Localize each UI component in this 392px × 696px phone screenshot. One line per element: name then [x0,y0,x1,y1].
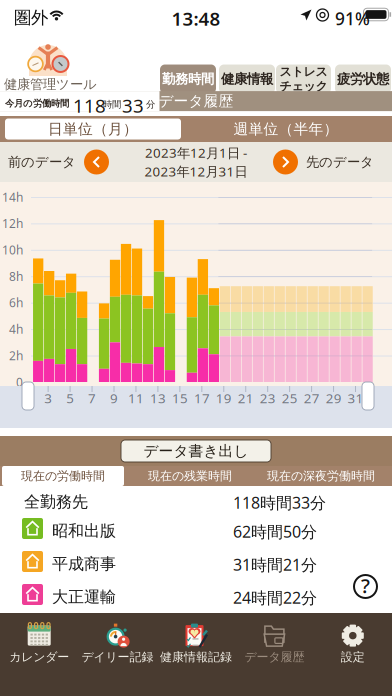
staticText: 0 [16,374,23,390]
staticText: データ履歴 [158,92,233,110]
staticText: 3 [44,389,52,407]
staticText: 大正運輸 [52,587,116,607]
staticText: 健康情報 [221,71,273,87]
staticText: 2023年12月1日 - [145,144,247,161]
staticText: 13:48 [171,6,220,31]
button[interactable]: 週単位（半年） [187,118,385,139]
staticText: 昭和出版 [52,521,116,541]
staticText: チェック [279,79,327,94]
staticText: 19 [216,389,232,407]
staticText: 平成商事 [52,554,116,574]
button[interactable]: 現在の労働時間 [2,466,124,486]
button[interactable]: ストレス [276,64,331,93]
button[interactable]: 健康情報 [219,64,275,93]
staticText: データ履歴 [244,650,304,664]
button[interactable]: 平成商事 [0,548,392,576]
staticText: 10h [2,242,23,258]
button[interactable]: 先のデータ [273,142,374,182]
staticText: 31 [348,389,364,407]
button[interactable]: 健康情報記録 [157,618,235,670]
staticText: 11 [128,389,144,407]
staticText: 29 [326,389,342,407]
staticText: 設定 [341,650,365,664]
staticText: 現在の労働時間 [21,469,105,483]
staticText: 17 [194,389,210,407]
staticText: 14h [2,189,23,205]
staticText: 勤務時間 [162,71,214,87]
staticText: 7 [88,389,96,407]
staticText: 健康情報記録 [160,650,232,664]
staticText: 62時間50分 [233,521,317,542]
button[interactable]: 大正運輸 [0,581,392,609]
staticText: 分 [146,99,155,110]
staticText: 現在の残業時間 [148,469,232,483]
staticText: 圏外 [14,7,48,28]
staticText: 118時間33分 [233,492,326,513]
staticText: 12h [2,215,23,231]
staticText: 21 [238,389,254,407]
staticText: 日単位（月） [48,120,138,138]
staticText: 6h [9,295,23,311]
staticText: 現在の深夜労働時間 [267,469,375,483]
staticText: データ書き出し [143,442,248,460]
staticText: 今月の労働時間 [5,98,69,109]
button[interactable]: 日単位（月） [5,118,181,139]
staticText: ストレス [279,64,327,79]
staticText: 15 [172,389,188,407]
button[interactable]: 昭和出版 [0,515,392,543]
button[interactable]: カレンダー [0,618,78,670]
staticText: 健康管理ツール [4,76,97,92]
staticText: 週単位（半年） [233,120,338,138]
staticText: 23 [260,389,276,407]
staticText: 5 [66,389,74,407]
staticText: 先のデータ [306,154,374,170]
staticText: 2023年12月31日 [144,162,247,180]
button[interactable]: データ履歴 [235,618,314,670]
staticText: 13 [150,389,166,407]
staticText: 118 [73,93,106,118]
staticText: 91% [335,7,370,30]
staticText: 33 [122,93,144,118]
button[interactable]: 勤務時間 [160,64,216,93]
staticText: 全勤務先 [24,492,88,512]
button[interactable]: 設定 [314,618,392,670]
staticText: 31時間21分 [233,554,317,575]
staticText: 8h [9,268,23,284]
staticText: デイリー記録 [82,650,154,664]
button[interactable]: 前のデータ [8,142,109,182]
button[interactable]: 現在の深夜労働時間 [252,466,390,486]
button[interactable]: 現在の残業時間 [126,466,254,486]
staticText: ? [361,572,370,599]
staticText: 前のデータ [8,154,76,170]
staticText: 4h [9,321,23,337]
staticText: 時間 [103,99,121,110]
staticText: 2h [9,348,23,363]
button[interactable]: データ書き出し [121,440,271,462]
staticText: 27 [304,389,320,407]
staticText: 疲労状態 [337,71,389,87]
button[interactable]: デイリー記録 [78,618,157,670]
staticText: 25 [282,389,298,407]
staticText: 9 [110,389,118,407]
staticText: 24時間22分 [233,587,317,608]
button[interactable]: 疲労状態 [335,64,391,93]
staticText: カレンダー [9,650,69,664]
